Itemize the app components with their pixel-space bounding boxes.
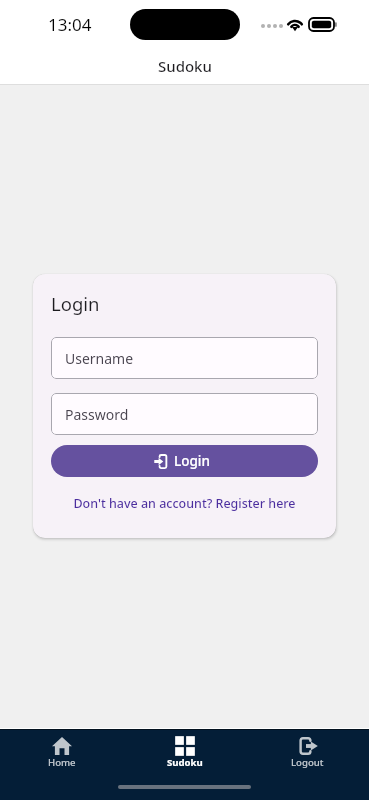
button[interactable]: Don't have an account? Register here: [51, 495, 318, 512]
button[interactable]: Home: [0, 735, 123, 771]
staticText: Login: [51, 291, 100, 316]
staticText: Username: [65, 349, 134, 368]
staticText: Home: [48, 756, 76, 769]
button[interactable]: Logout: [246, 735, 369, 771]
button[interactable]: Sudoku: [123, 735, 246, 771]
staticText: Logout: [291, 756, 324, 769]
button[interactable]: Login: [51, 445, 318, 477]
staticText: Password: [65, 405, 129, 424]
staticText: Sudoku: [158, 56, 212, 76]
button[interactable]: Username: [51, 337, 318, 379]
staticText: Login: [174, 452, 210, 470]
staticText: 13:04: [48, 13, 92, 36]
button[interactable]: Password: [51, 393, 318, 435]
staticText: Sudoku: [167, 756, 203, 769]
